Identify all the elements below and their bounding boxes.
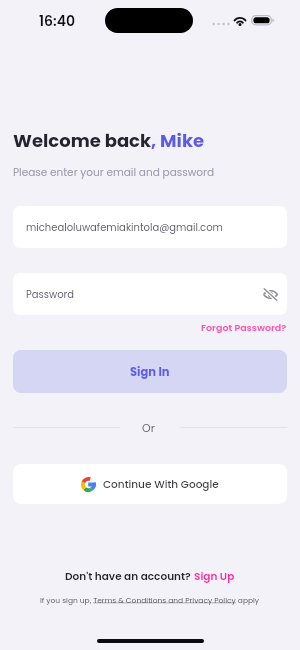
staticText: Password (26, 287, 75, 301)
staticText: Please enter your email and password (13, 165, 215, 180)
button[interactable]: Forgot Password? (200, 321, 288, 334)
button[interactable]: Password (13, 273, 287, 315)
staticText: If you sign up, Terms & Conditions and P… (40, 595, 260, 605)
staticText: michealoluwafemiakintola@gmail.com (26, 220, 223, 234)
button[interactable]: Continue With Google (13, 464, 287, 504)
staticText: Welcome back, Mike (13, 128, 205, 153)
staticText: Continue With Google (103, 477, 219, 492)
button[interactable]: Show password (263, 288, 278, 301)
staticText: Forgot Password? (201, 321, 287, 334)
staticText: 16:40 (39, 11, 76, 31)
staticText: Or (142, 420, 155, 435)
staticText: Don't have an account? (65, 569, 194, 584)
staticText: Sign In (130, 364, 170, 380)
button[interactable]: Sign In (13, 350, 287, 393)
button[interactable]: Don't have an account? (65, 569, 235, 584)
button[interactable]: michealoluwafemiakintola@gmail.com (13, 206, 287, 248)
staticText: Sign Up (194, 569, 235, 584)
